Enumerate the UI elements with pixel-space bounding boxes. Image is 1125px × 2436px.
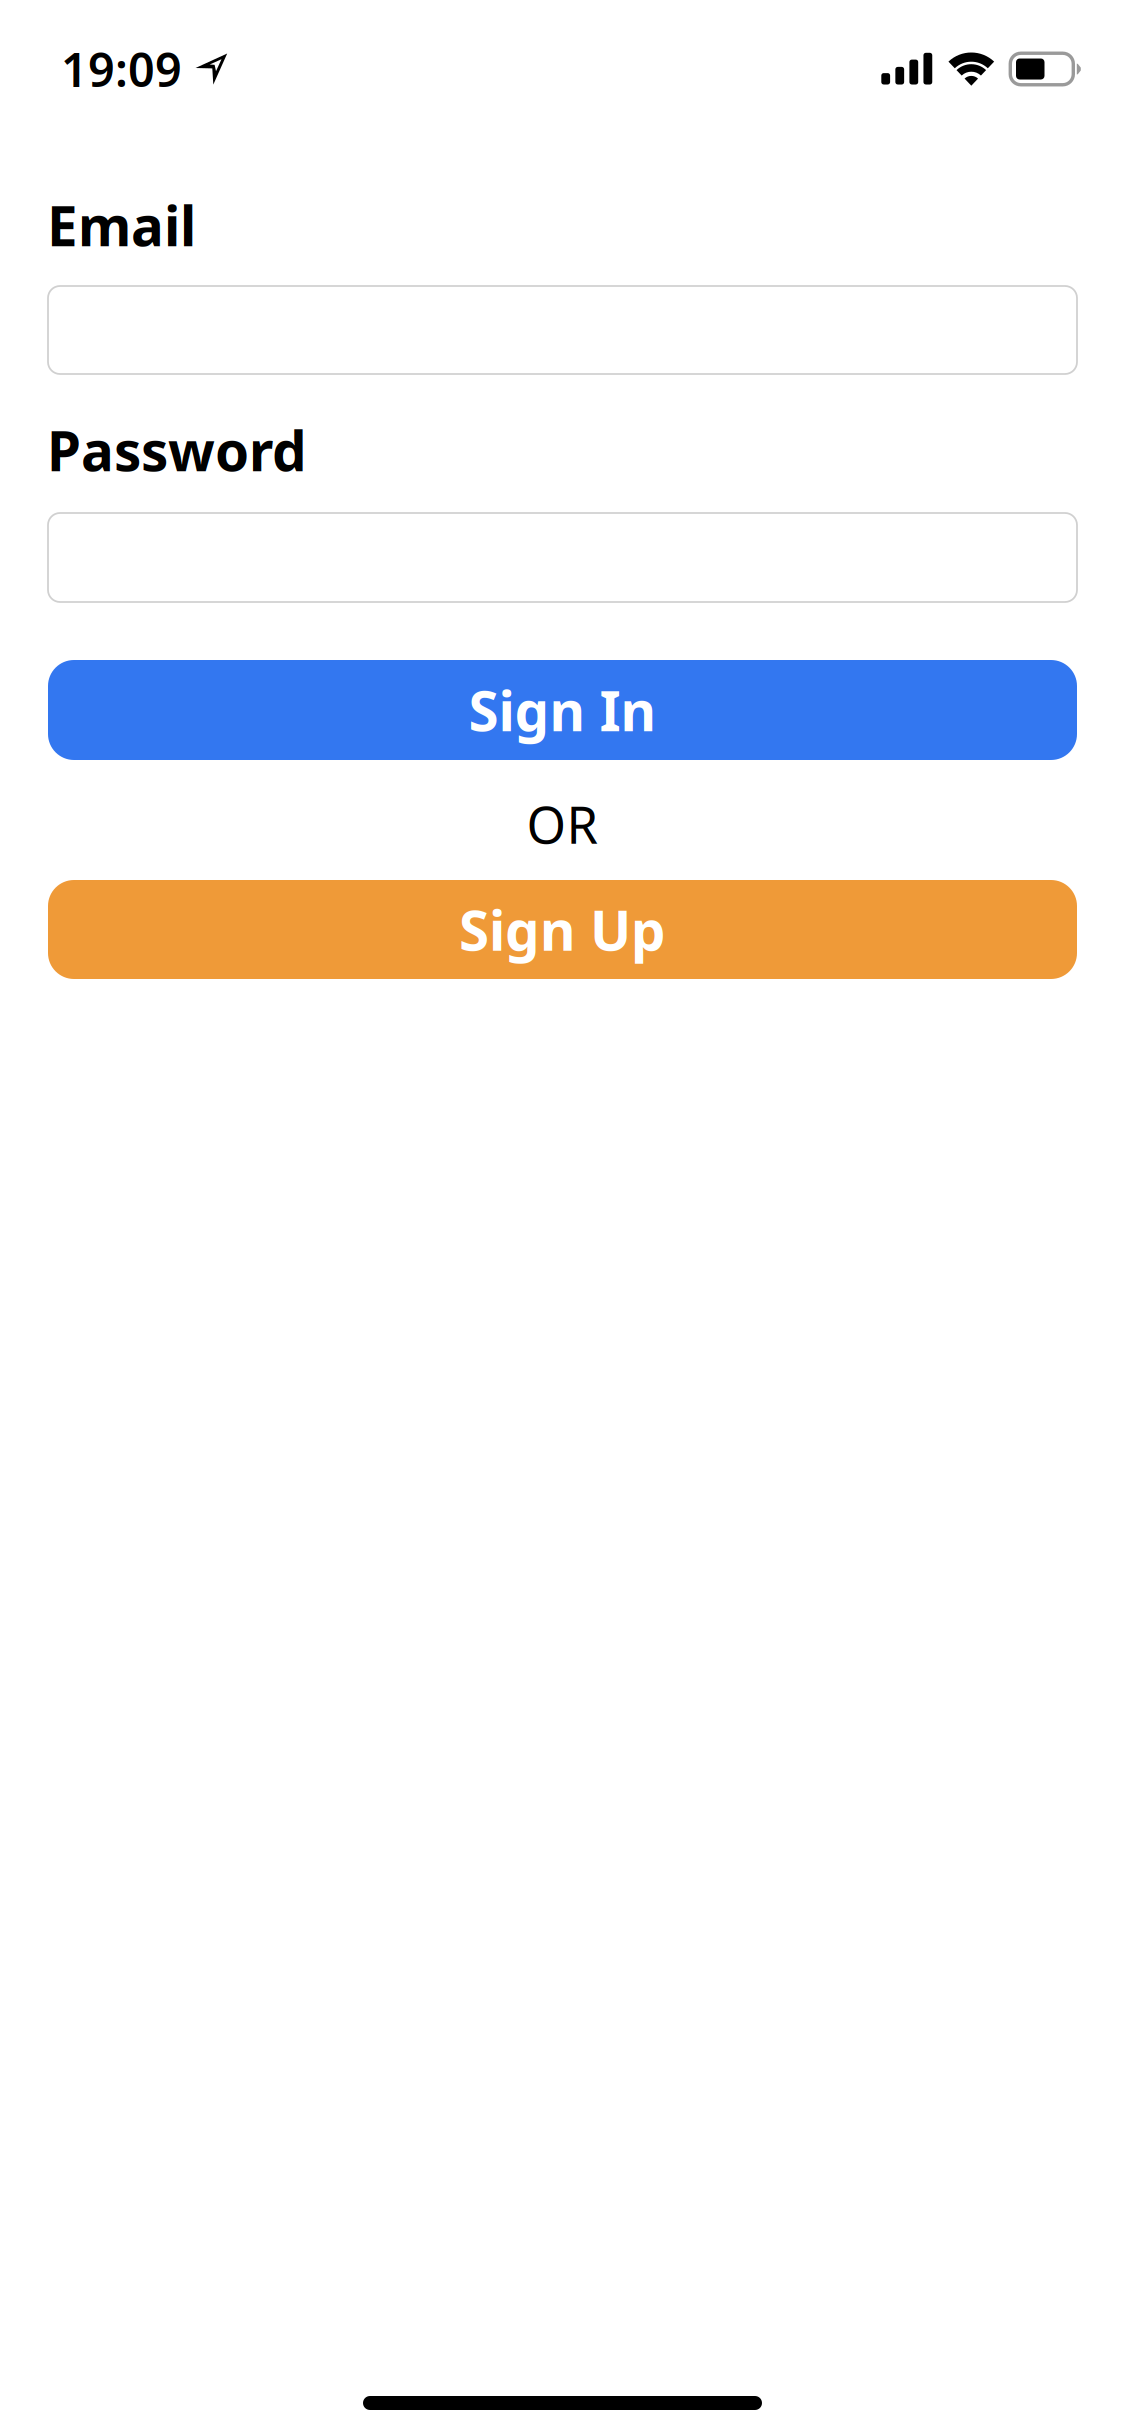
staticText: 19:09 xyxy=(61,38,182,100)
staticText: Email xyxy=(47,189,196,261)
staticText: OR xyxy=(526,790,598,858)
staticText: Password xyxy=(47,414,307,486)
staticText: Sign Up xyxy=(459,893,666,966)
button[interactable]: Sign Up xyxy=(48,880,1077,979)
staticText: Sign In xyxy=(468,674,656,746)
button[interactable]: Sign In xyxy=(48,660,1077,760)
